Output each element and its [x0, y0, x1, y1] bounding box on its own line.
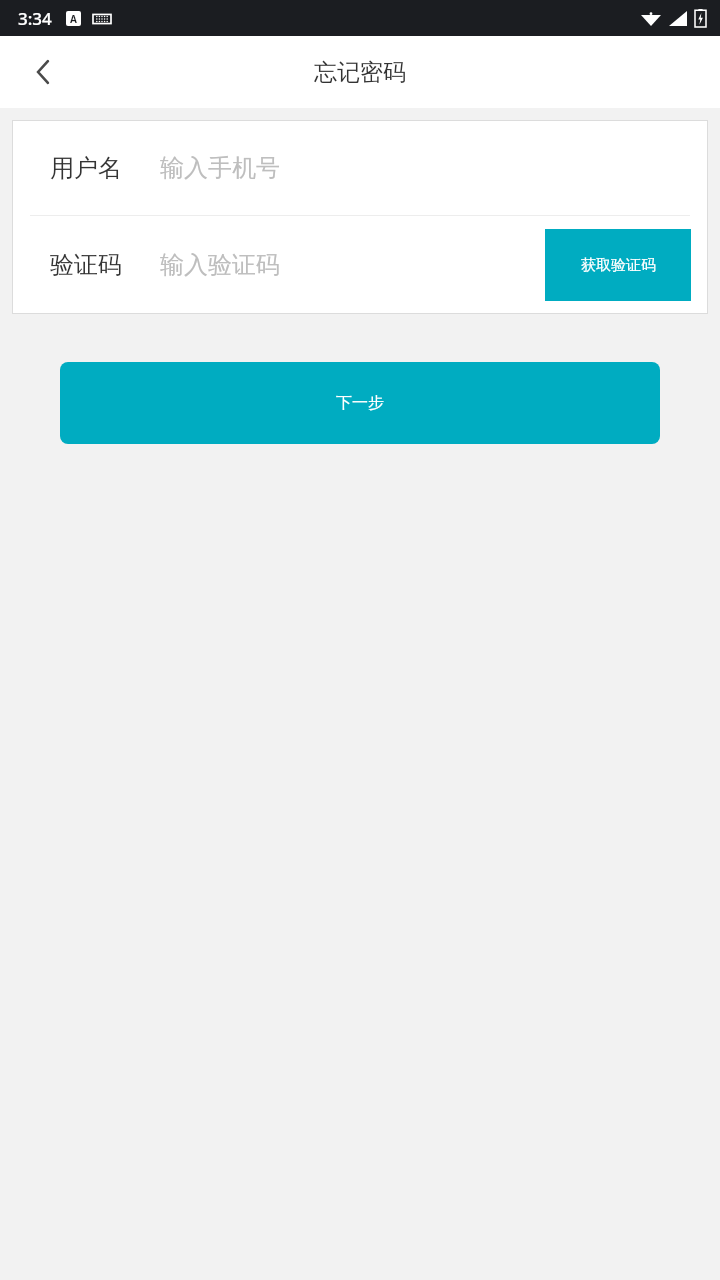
- button[interactable]: 验证码: [50, 250, 122, 280]
- staticText: 输入手机号: [160, 153, 280, 183]
- staticText: 下一步: [336, 393, 384, 413]
- button[interactable]: 用户名: [12, 120, 708, 215]
- button[interactable]: 输入验证码: [160, 250, 280, 280]
- staticText: 忘记密码: [314, 58, 406, 87]
- staticText: A: [70, 12, 77, 26]
- staticText: 获取验证码: [581, 256, 656, 275]
- staticText: 3:34: [18, 7, 52, 30]
- button[interactable]: 下一步: [60, 362, 660, 444]
- button[interactable]: Back: [0, 36, 86, 108]
- staticText: 用户名: [50, 153, 122, 183]
- button[interactable]: 获取验证码: [545, 229, 691, 301]
